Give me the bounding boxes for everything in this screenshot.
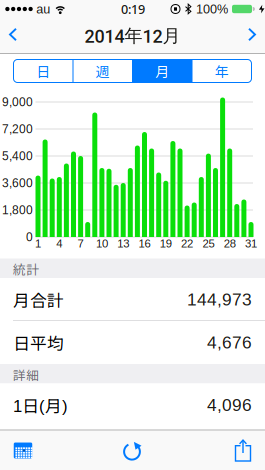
button[interactable]: 日平均 (0, 321, 265, 364)
button[interactable]: 年 (192, 59, 251, 82)
staticText: 7 (78, 237, 84, 250)
staticText: 詳細 (13, 365, 39, 384)
staticText: 2014年12月 (84, 25, 180, 47)
staticText: 0:19 (121, 0, 145, 18)
staticText: 日 (36, 61, 50, 81)
staticText: 5,400 (2, 149, 33, 163)
button[interactable]: 1日(月) (0, 383, 265, 426)
button[interactable]: 週 (73, 59, 132, 82)
staticText: 4 (56, 237, 62, 250)
button[interactable] (239, 19, 265, 49)
staticText: 9,000 (2, 95, 33, 109)
staticText: 月 (155, 61, 169, 81)
button[interactable] (112, 433, 152, 467)
staticText: 100% (196, 2, 228, 16)
staticText: 31 (245, 237, 257, 250)
staticText: 1,800 (2, 203, 33, 217)
staticText: 19 (160, 237, 172, 250)
staticText: 年 (215, 61, 229, 81)
button[interactable]: 日 (13, 59, 73, 82)
staticText: 週 (96, 61, 110, 81)
button[interactable]: 月合計 (0, 278, 265, 321)
staticText: 1日(月) (13, 393, 68, 417)
button[interactable]: 月 (132, 59, 192, 82)
staticText: 3,600 (2, 176, 33, 190)
button[interactable] (3, 433, 43, 467)
staticText: 統計 (13, 260, 39, 278)
staticText: 日平均 (13, 330, 64, 354)
staticText: 16 (138, 237, 150, 250)
staticText: 月合計 (13, 287, 64, 311)
staticText: 22 (181, 237, 193, 250)
button[interactable] (0, 19, 26, 49)
staticText: 28 (224, 237, 236, 250)
staticText: 25 (202, 237, 214, 250)
button[interactable] (223, 433, 263, 467)
staticText: 1 (35, 237, 41, 250)
staticText: 4,096 (207, 395, 252, 415)
staticText: 10 (96, 237, 108, 250)
staticText: 7,200 (2, 122, 33, 136)
staticText: 144,973 (187, 290, 252, 309)
staticText: 4,676 (207, 333, 252, 352)
staticText: 13 (117, 237, 129, 250)
staticText: 0 (26, 230, 33, 244)
staticText: au (36, 2, 50, 16)
